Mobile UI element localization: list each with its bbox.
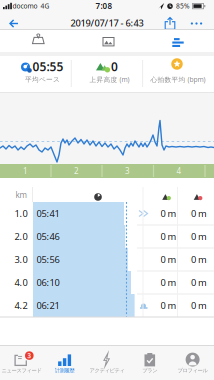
staticText: 85% (176, 2, 190, 10)
staticText: 0 m (191, 207, 207, 220)
staticText: 1.0 (14, 207, 27, 220)
button[interactable]: プロフィール (171, 345, 214, 380)
staticText: 4G (40, 2, 49, 10)
staticText: プラン (142, 367, 157, 374)
button[interactable]: 3 (0, 345, 43, 380)
staticText: 0 (111, 58, 118, 74)
button[interactable]: Share (161, 15, 179, 31)
staticText: 0 m (191, 230, 207, 243)
staticText: 4.2 (14, 299, 27, 312)
staticText: 3.0 (14, 253, 27, 266)
staticText: 05:55 (32, 58, 63, 74)
button[interactable]: Back (1, 14, 25, 31)
staticText: 2.0 (14, 230, 27, 243)
button[interactable]: プラン (128, 345, 171, 380)
staticText: 06:10 (36, 276, 59, 289)
staticText: 06:21 (36, 299, 59, 312)
staticText: 3 (125, 166, 130, 176)
staticText: アクティビティ (89, 367, 124, 374)
staticText: プロフィール (178, 367, 208, 374)
staticText: 0 m (160, 230, 176, 243)
button[interactable]: More (186, 15, 206, 31)
staticText: 心拍数平均 (bpm) (150, 75, 205, 84)
button[interactable]: アクティビティ (86, 345, 128, 380)
staticText: 0 m (191, 299, 207, 312)
staticText: 05:56 (36, 253, 59, 266)
staticText: 1 (23, 166, 28, 176)
staticText: 上昇高度 (m) (89, 75, 129, 84)
staticText: 0 m (160, 276, 176, 289)
staticText: 0 m (160, 253, 176, 266)
staticText: 05:46 (36, 230, 59, 243)
staticText: 0 m (160, 299, 176, 312)
staticText: km (15, 190, 26, 200)
staticText: 計測履歴 (54, 367, 74, 374)
staticText: 4.0 (14, 276, 27, 289)
staticText: 05:41 (36, 207, 59, 220)
button[interactable]: Splits (170, 37, 186, 48)
button[interactable]: Map (31, 33, 49, 49)
staticText: docomo (12, 2, 37, 10)
staticText: ニュースフィード (1, 367, 41, 374)
staticText: 4 (176, 166, 181, 176)
staticText: 0 m (191, 276, 207, 289)
staticText: 3 (27, 351, 31, 360)
staticText: 7:08 (95, 1, 112, 11)
button[interactable]: Photos (99, 33, 117, 49)
button[interactable]: 計測履歴 (43, 345, 86, 380)
staticText: 平均ペース (25, 75, 60, 84)
staticText: 0 m (160, 207, 176, 220)
staticText: 2 (74, 166, 79, 176)
staticText: 0 m (191, 253, 207, 266)
staticText: 2019/07/17 - 6:43 (70, 17, 143, 29)
